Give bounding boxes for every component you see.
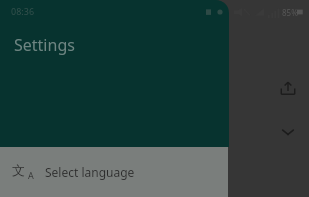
button[interactable]: Expand xyxy=(276,120,300,144)
button[interactable]: Share xyxy=(276,76,300,100)
staticText: 85% xyxy=(282,7,298,18)
staticText: 08:36 xyxy=(11,5,35,17)
staticText: Select language xyxy=(45,164,135,180)
button[interactable]: 文 xyxy=(0,147,228,197)
staticText: A xyxy=(28,169,34,181)
staticText: Settings xyxy=(14,34,75,56)
staticText: 文 xyxy=(12,162,25,178)
